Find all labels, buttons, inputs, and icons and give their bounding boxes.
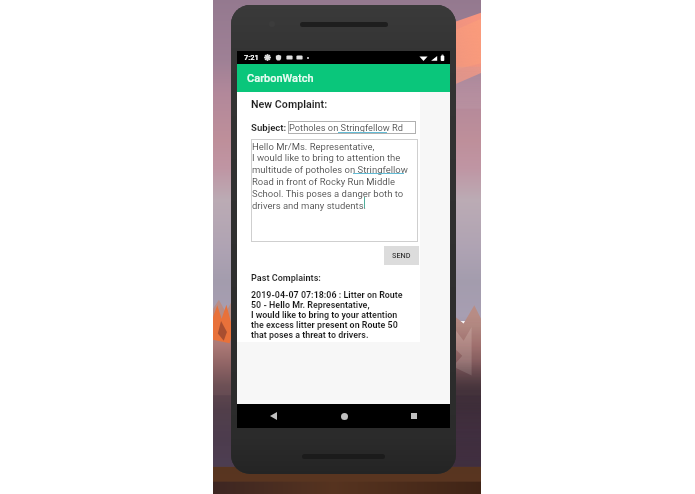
- staticText: Past Complaints:: [251, 273, 321, 284]
- staticText: Subject:: [251, 122, 287, 133]
- staticText: New Complaint:: [251, 98, 328, 111]
- staticText: SEND: [392, 251, 411, 260]
- staticText: 7:21: [244, 53, 259, 62]
- button[interactable]: Hello Mr/Ms. Representative, I would lik…: [251, 139, 418, 242]
- button[interactable]: Back: [261, 404, 285, 428]
- staticText: CarbonWatch: [247, 72, 314, 85]
- button[interactable]: Home: [332, 404, 356, 428]
- button[interactable]: CarbonWatch: [237, 64, 450, 92]
- staticText: Hello Mr/Ms. Representative, I would lik…: [252, 141, 408, 212]
- button[interactable]: Potholes on Stringfellow Rd: [288, 121, 416, 134]
- staticText: 2019-04-07 07:18:06 : Litter on Route 50…: [251, 290, 403, 340]
- button[interactable]: Recents: [402, 404, 426, 428]
- staticText: Potholes on Stringfellow Rd: [289, 122, 404, 133]
- button[interactable]: SEND: [384, 246, 419, 265]
